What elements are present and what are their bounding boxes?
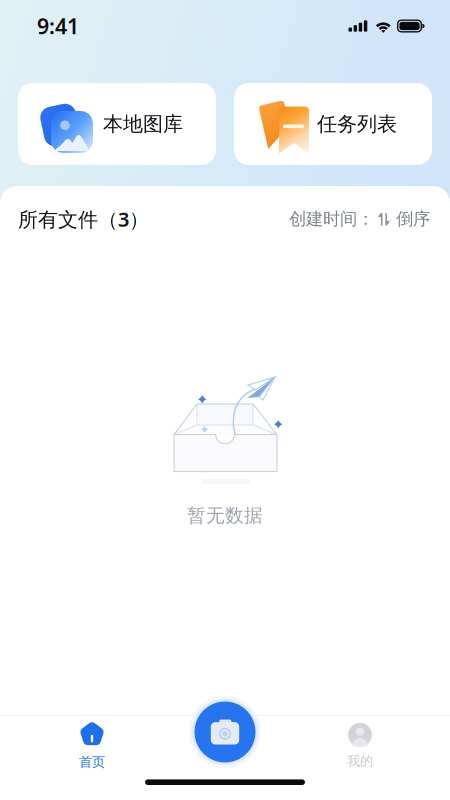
staticText: 倒序 bbox=[396, 208, 430, 230]
button[interactable]: 任务列表 bbox=[234, 83, 432, 165]
staticText: 任务列表 bbox=[317, 112, 397, 136]
staticText: 暂无数据 bbox=[187, 504, 263, 527]
button[interactable]: 我的 bbox=[314, 722, 406, 770]
staticText: 我的 bbox=[347, 753, 373, 769]
staticText: 本地图库 bbox=[103, 112, 183, 136]
button[interactable]: 本地图库 bbox=[18, 83, 216, 165]
button[interactable]: 首页 bbox=[46, 722, 138, 770]
staticText: 创建时间： bbox=[289, 208, 374, 230]
staticText: 所有文件（3） bbox=[18, 206, 149, 232]
staticText: 9:41 bbox=[37, 12, 79, 40]
button[interactable]: 拍照 bbox=[189, 696, 261, 768]
staticText: 首页 bbox=[79, 754, 105, 770]
button[interactable]: 创建时间： bbox=[289, 208, 430, 230]
